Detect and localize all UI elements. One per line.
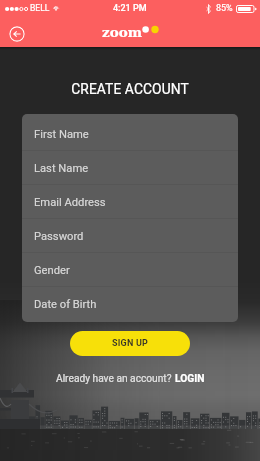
button[interactable]: Gender xyxy=(22,253,238,287)
staticText: Password xyxy=(34,230,84,243)
staticText: SIGN UP xyxy=(112,338,149,349)
button[interactable]: First Name xyxy=(22,117,238,151)
button[interactable]: Password xyxy=(22,219,238,253)
button[interactable]: Already have an account? xyxy=(0,373,260,385)
staticText: First Name xyxy=(34,128,89,141)
button[interactable]: SIGN UP xyxy=(70,331,190,356)
button[interactable]: Email Address xyxy=(22,185,238,219)
button[interactable]: Last Name xyxy=(22,151,238,185)
staticText: Email Address xyxy=(34,196,106,209)
staticText: Date of Birth xyxy=(34,298,97,311)
staticText: CREATE ACCOUNT xyxy=(0,81,260,97)
button[interactable]: Date of Birth xyxy=(22,287,238,321)
staticText: LOGIN xyxy=(175,373,205,385)
staticText: zoom xyxy=(102,24,142,40)
staticText: 4:21 PM xyxy=(113,3,147,14)
staticText: Last Name xyxy=(34,162,89,175)
staticText: 85% xyxy=(216,3,233,14)
button[interactable]: Back xyxy=(9,26,25,42)
staticText: Already have an account? xyxy=(56,373,175,385)
staticText: Gender xyxy=(34,264,70,277)
staticText: BELL xyxy=(30,3,50,13)
